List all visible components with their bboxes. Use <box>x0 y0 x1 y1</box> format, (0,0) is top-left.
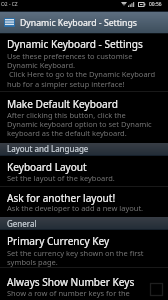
staticText: Layout and Language <box>7 143 89 154</box>
other: App icon <box>4 18 15 27</box>
staticText: Make Default Keyboard <box>7 97 118 111</box>
staticText: Dynamic Keyboard - Settings <box>20 17 137 29</box>
staticText: Set the currency key shown on the first <box>7 248 144 258</box>
staticText: keyboard as the default keyboard. <box>7 128 127 138</box>
button[interactable]: Primary Currency Key <box>0 230 168 268</box>
staticText: After clicking this button, click the <box>7 110 126 120</box>
staticText: 00:56 <box>149 1 162 8</box>
staticText: General <box>7 218 37 229</box>
staticText: Show a row of number keys for the <box>7 288 130 298</box>
button[interactable]: Keyboard Layout <box>0 156 168 187</box>
staticText: Set the layout of the keyboard. <box>7 173 115 183</box>
staticText: hub for a simpler setup interface! <box>7 79 125 89</box>
staticText: Use these preferences to customise <box>7 51 133 61</box>
staticText: Ask the developer to add a new layout. <box>7 203 144 213</box>
staticText: Dynamic keyboard option to set Dynamic <box>7 119 152 129</box>
staticText: Dynamic Keyboard - Settings <box>7 37 143 51</box>
button[interactable]: Always Show Number Keys checkbox <box>150 283 163 296</box>
staticText: Always Show Number Keys <box>7 275 135 289</box>
button[interactable]: Ask for another layout! <box>0 187 168 217</box>
button[interactable] <box>0 12 168 34</box>
staticText: Ask for another layout! <box>7 191 116 205</box>
button[interactable]: Make Default Keyboard <box>0 92 168 143</box>
staticText: Keyboard Layout <box>7 160 87 174</box>
staticText: Dynamic Keyboard. <box>7 60 76 70</box>
button[interactable]: Dynamic Keyboard - Settings <box>0 34 168 92</box>
staticText: Primary Currency Key <box>7 234 110 248</box>
staticText: O2 - CZ <box>1 1 18 8</box>
staticText: Click Here to go to the Dynamic Keyboard <box>7 69 156 79</box>
button[interactable]: Always Show Number Keys <box>0 268 168 300</box>
staticText: symbols page. <box>7 257 58 267</box>
